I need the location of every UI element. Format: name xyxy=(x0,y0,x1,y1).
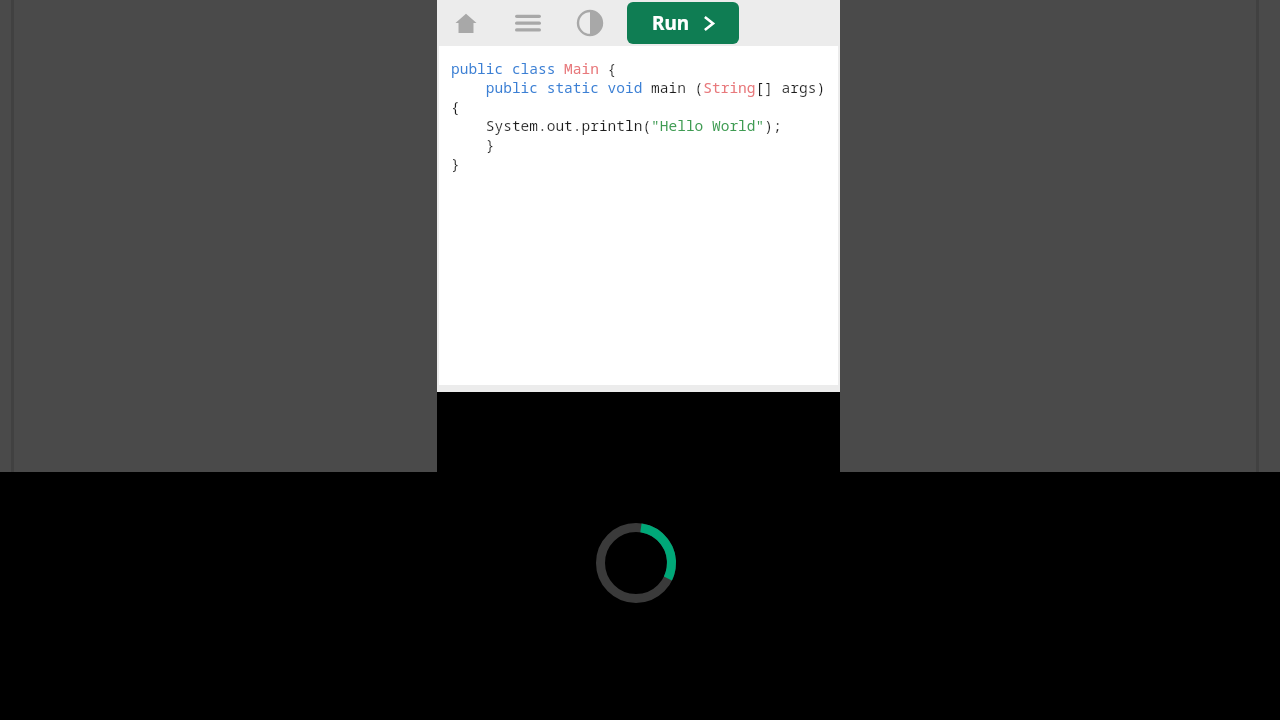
button[interactable]: Menu xyxy=(507,2,549,44)
staticText: public class Main { public static void m… xyxy=(451,58,834,174)
button[interactable]: Toggle theme xyxy=(569,2,611,44)
staticText: Run xyxy=(652,10,690,36)
button[interactable]: Run xyxy=(627,2,739,44)
button[interactable]: Home xyxy=(445,2,487,44)
